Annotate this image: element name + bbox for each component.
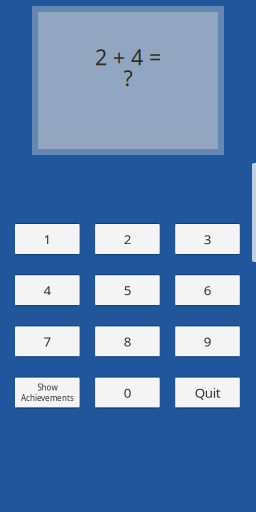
staticText: Quit [194, 384, 220, 401]
staticText: 3 [203, 230, 211, 248]
staticText: 9 [203, 332, 211, 350]
button[interactable]: 7 [15, 325, 80, 357]
button[interactable]: Show Achievements [15, 377, 80, 409]
button[interactable]: 0 [95, 377, 160, 409]
staticText: 5 [123, 281, 131, 299]
staticText: ? [123, 64, 132, 92]
button[interactable]: 8 [95, 325, 160, 357]
staticText: 7 [43, 332, 51, 350]
button[interactable]: 5 [95, 274, 160, 306]
staticText: 2 + 4 = [95, 43, 161, 71]
button[interactable]: 2 [95, 223, 160, 255]
button[interactable]: Quit [175, 377, 240, 409]
staticText: 2 [123, 230, 131, 248]
button[interactable]: 4 [15, 274, 80, 306]
staticText: 4 [43, 281, 51, 299]
button[interactable]: 6 [175, 274, 240, 306]
staticText: 1 [43, 230, 51, 248]
staticText: 8 [123, 332, 131, 350]
button[interactable]: 1 [15, 223, 80, 255]
staticText: 6 [203, 281, 211, 299]
staticText: Show Achievements [21, 382, 74, 403]
button[interactable]: 3 [175, 223, 240, 255]
button[interactable]: 9 [175, 325, 240, 357]
staticText: 0 [123, 384, 131, 401]
